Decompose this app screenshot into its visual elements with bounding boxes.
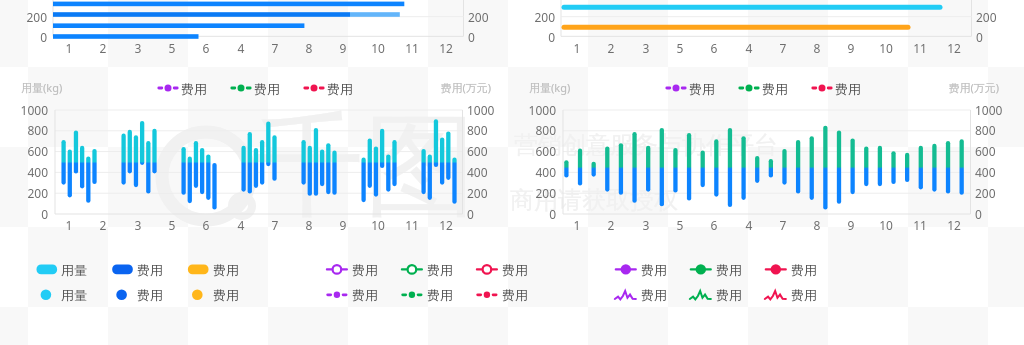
staticText: 3 (123, 40, 153, 56)
staticText: 9 (836, 217, 866, 233)
staticText: 2 (88, 217, 118, 233)
staticText: 用量(kg) (529, 80, 589, 96)
staticText: 200 (514, 185, 556, 201)
staticText: 0 (975, 206, 1017, 222)
staticText: 11 (905, 217, 935, 233)
staticText: 6 (699, 217, 729, 233)
staticText: 600 (467, 143, 509, 159)
staticText: 5 (665, 40, 695, 56)
staticText: 费用 (427, 287, 457, 303)
staticText: 800 (467, 122, 509, 138)
staticText: 3 (631, 217, 661, 233)
staticText: 费用 (352, 287, 382, 303)
staticText: 200 (467, 185, 509, 201)
staticText: 12 (939, 217, 969, 233)
staticText: 用量(kg) (21, 80, 81, 96)
staticText: 0 (8, 29, 47, 45)
staticText: 营销创意服务与协作平台 (514, 130, 778, 160)
staticText: 7 (260, 40, 290, 56)
staticText: 200 (8, 9, 47, 25)
staticText: 2 (596, 217, 626, 233)
staticText: 400 (514, 164, 556, 180)
staticText: 0 (468, 29, 507, 45)
staticText: 用量 (61, 287, 91, 303)
staticText: 1000 (514, 102, 556, 118)
staticText: 9 (836, 40, 866, 56)
staticText: 1000 (975, 102, 1017, 118)
staticText: 400 (467, 164, 509, 180)
staticText: 费用 (137, 287, 167, 303)
staticText: 6 (699, 40, 729, 56)
staticText: 0 (467, 206, 509, 222)
staticText: 费用 (352, 262, 382, 278)
staticText: 600 (6, 143, 48, 159)
staticText: 12 (431, 217, 461, 233)
staticText: 11 (397, 217, 427, 233)
staticText: 费用(万元) (929, 80, 999, 96)
staticText: 费用 (791, 262, 821, 278)
staticText: 3 (631, 40, 661, 56)
staticText: 0 (514, 206, 556, 222)
staticText: 800 (975, 122, 1017, 138)
staticText: 9 (328, 40, 358, 56)
staticText: 费用 (641, 262, 671, 278)
staticText: 200 (975, 185, 1017, 201)
staticText: 400 (6, 164, 48, 180)
staticText: 200 (6, 185, 48, 201)
staticText: 费用 (254, 81, 284, 97)
staticText: 9 (328, 217, 358, 233)
staticText: 0 (516, 29, 555, 45)
staticText: 400 (975, 164, 1017, 180)
staticText: 800 (6, 122, 48, 138)
staticText: 11 (905, 40, 935, 56)
staticText: 0 (976, 29, 1015, 45)
staticText: 费用 (427, 262, 457, 278)
staticText: 费用 (213, 287, 243, 303)
staticText: 7 (260, 217, 290, 233)
staticText: 7 (768, 217, 798, 233)
staticText: 费用 (716, 287, 746, 303)
staticText: 2 (596, 40, 626, 56)
staticText: 1 (562, 217, 592, 233)
staticText: 费用 (835, 81, 865, 97)
staticText: 10 (871, 217, 901, 233)
staticText: 4 (226, 40, 256, 56)
staticText: 200 (468, 9, 507, 25)
staticText: 600 (514, 143, 556, 159)
staticText: 6 (191, 40, 221, 56)
staticText: 8 (802, 217, 832, 233)
staticText: 2 (88, 40, 118, 56)
staticText: 10 (871, 40, 901, 56)
staticText: 12 (939, 40, 969, 56)
staticText: 4 (734, 217, 764, 233)
staticText: 千图 (252, 96, 476, 237)
staticText: 费用 (762, 81, 792, 97)
staticText: 费用(万元) (421, 80, 491, 96)
staticText: 8 (294, 40, 324, 56)
staticText: 0 (6, 206, 48, 222)
staticText: 费用 (791, 287, 821, 303)
staticText: 费用 (327, 81, 357, 97)
staticText: 1 (54, 40, 84, 56)
staticText: 5 (157, 40, 187, 56)
staticText: 4 (734, 40, 764, 56)
staticText: 5 (157, 217, 187, 233)
staticText: 商用请获取授权 (510, 185, 678, 215)
staticText: 6 (191, 217, 221, 233)
staticText: 800 (514, 122, 556, 138)
staticText: 1000 (6, 102, 48, 118)
staticText: 600 (975, 143, 1017, 159)
staticText: 5 (665, 217, 695, 233)
staticText: 费用 (641, 287, 671, 303)
staticText: 1000 (467, 102, 509, 118)
staticText: 费用 (137, 262, 167, 278)
staticText: 费用 (502, 287, 532, 303)
staticText: 200 (516, 9, 555, 25)
staticText: 4 (226, 217, 256, 233)
staticText: 费用 (502, 262, 532, 278)
staticText: 1 (562, 40, 592, 56)
staticText: 12 (431, 40, 461, 56)
staticText: 费用 (689, 81, 719, 97)
staticText: 1 (54, 217, 84, 233)
staticText: 10 (363, 217, 393, 233)
